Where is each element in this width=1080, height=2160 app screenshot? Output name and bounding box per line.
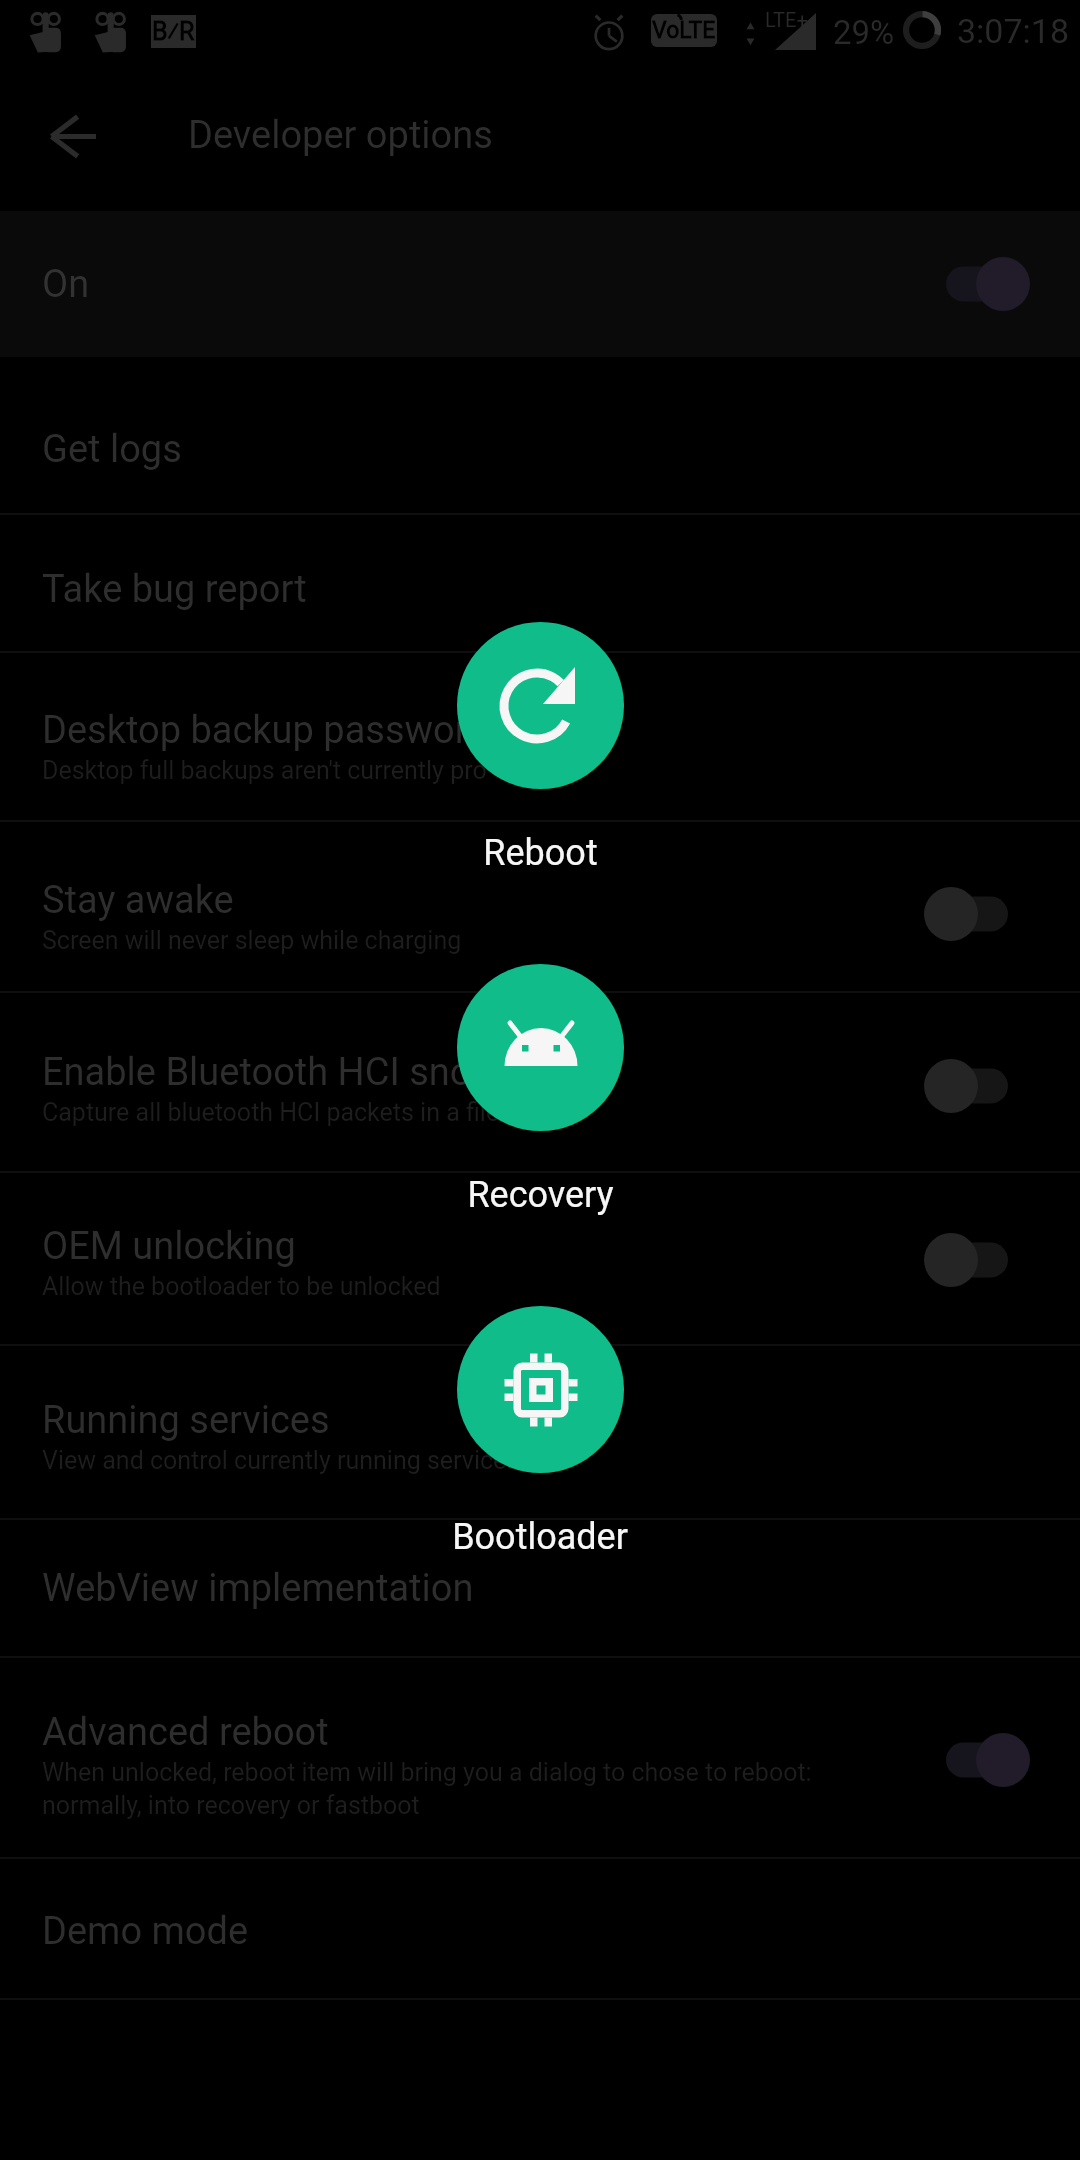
staticText: B⁄R [152, 17, 195, 46]
staticText: Demo mode [42, 1909, 249, 1954]
staticText: Reboot [483, 832, 598, 874]
staticText: Take bug report [42, 567, 307, 612]
button[interactable]: Enable Bluetooth HCI snoop log [0, 993, 1080, 1173]
staticText: View and control currently running servi… [42, 1446, 520, 1475]
button[interactable]: Developer options toggle [946, 254, 1030, 314]
staticText: Stay awake [42, 878, 234, 923]
button[interactable]: Bootloader [457, 1306, 624, 1473]
staticText: Running services [42, 1398, 330, 1443]
staticText: When unlocked, reboot item will bring yo… [42, 1758, 812, 1820]
staticText: Allow the bootloader to be unlocked [42, 1272, 441, 1301]
staticText: Desktop full backups aren't currently pr… [42, 756, 487, 785]
staticText: Developer options [188, 113, 493, 158]
staticText: WebView implementation [42, 1566, 474, 1611]
button[interactable]: OEM unlocking toggle [924, 1230, 1008, 1290]
button[interactable]: On [0, 211, 1080, 357]
button[interactable]: Take bug report [0, 515, 1080, 653]
button[interactable]: Reboot [457, 622, 624, 789]
button[interactable]: Desktop backup password [0, 653, 1080, 822]
staticText: On [42, 262, 90, 307]
staticText: OEM unlocking [42, 1224, 296, 1269]
button[interactable]: Enable Bluetooth HCI snoop log toggle [924, 1056, 1008, 1116]
button[interactable]: Stay awake toggle [924, 884, 1008, 944]
staticText: Capture all bluetooth HCI packets in a f… [42, 1098, 500, 1127]
button[interactable]: Stay awake [0, 822, 1080, 993]
button[interactable]: Recovery [457, 964, 624, 1131]
button[interactable]: WebView implementation [0, 1520, 1080, 1658]
staticText: Get logs [42, 427, 182, 472]
staticText: Bootloader [452, 1516, 628, 1558]
staticText: Advanced reboot [42, 1710, 329, 1755]
staticText: LTE+ [765, 8, 808, 31]
staticText: 3:07:18 [957, 11, 1070, 51]
staticText: 29% [833, 13, 895, 52]
staticText: Recovery [467, 1174, 614, 1216]
button[interactable]: Back [24, 88, 120, 184]
button[interactable]: Get logs [0, 357, 1080, 515]
staticText: Enable Bluetooth HCI snoop log [42, 1050, 577, 1095]
button[interactable]: Demo mode [0, 1859, 1080, 2000]
staticText: Screen will never sleep while charging [42, 926, 462, 955]
button[interactable]: Running services [0, 1346, 1080, 1520]
button[interactable]: OEM unlocking [0, 1173, 1080, 1346]
staticText: VoLTE [652, 17, 716, 44]
button[interactable]: Advanced reboot toggle [946, 1730, 1030, 1790]
staticText: Desktop backup password [42, 708, 489, 753]
button[interactable]: Advanced reboot [0, 1658, 1080, 1859]
